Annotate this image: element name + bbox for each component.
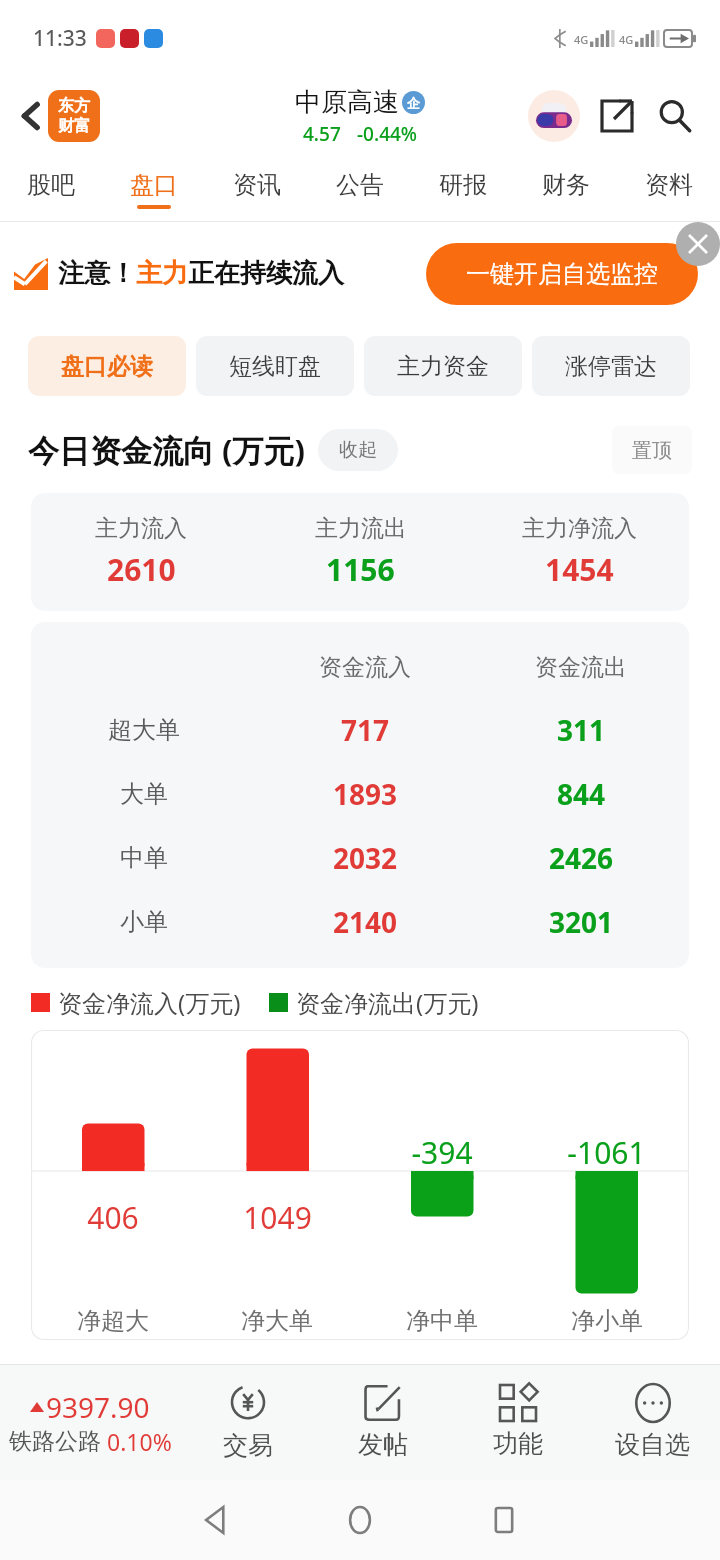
staticText: 交易	[223, 1430, 273, 1461]
button[interactable]: 财务	[514, 156, 617, 222]
staticText: 企	[407, 95, 420, 111]
staticText: 主力流出	[315, 514, 407, 543]
button[interactable]: 发帖	[315, 1364, 450, 1480]
staticText: 406	[87, 1197, 139, 1238]
staticText: 小单	[120, 907, 168, 937]
button[interactable]: 一键开启自选监控	[426, 243, 698, 305]
button[interactable]: 研报	[411, 156, 514, 222]
staticText: 研报	[439, 170, 487, 200]
staticText: 2610	[107, 549, 176, 590]
staticText: 9397.90	[46, 1388, 150, 1426]
staticText: 11:33	[33, 24, 87, 53]
staticText: 净中单	[406, 1306, 478, 1336]
staticText: 铁路公路	[9, 1427, 101, 1456]
staticText: 主力流入	[95, 514, 187, 543]
staticText: 0.10%	[107, 1426, 172, 1457]
button[interactable]: 中单	[31, 826, 689, 890]
staticText: 3201	[549, 903, 614, 941]
staticText: 收起	[339, 438, 377, 462]
staticText: 资金净流入(万元)	[58, 986, 241, 1019]
button[interactable]: 盘口必读	[28, 336, 186, 396]
button[interactable]: 资料	[617, 156, 720, 222]
staticText: -0.44%	[357, 121, 418, 147]
staticText: 超大单	[108, 715, 180, 745]
staticText: 短线盯盘	[229, 352, 321, 381]
staticText: 财富	[58, 116, 90, 136]
staticText: 设自选	[615, 1429, 690, 1460]
button[interactable]: 设自选	[585, 1364, 720, 1480]
button[interactable]: 注意！	[0, 222, 720, 325]
button[interactable]: 406	[31, 1030, 689, 1340]
staticText: 资金流出	[535, 653, 627, 682]
staticText: 股吧	[27, 170, 75, 200]
staticText: 中原高速	[295, 86, 399, 119]
button[interactable]: 涨停雷达	[532, 336, 690, 396]
staticText: 2032	[333, 839, 398, 877]
staticText: 1454	[545, 549, 614, 590]
button[interactable]: 返回	[14, 94, 48, 138]
button[interactable]: 置顶	[612, 426, 692, 474]
staticText: 一键开启自选监控	[466, 259, 658, 289]
staticText: 东方	[58, 96, 90, 116]
button[interactable]: 短线盯盘	[196, 336, 354, 396]
staticText: 资金净流出(万元)	[296, 986, 479, 1019]
staticText: 311	[557, 711, 606, 749]
staticText: 2426	[549, 839, 614, 877]
staticText: 功能	[493, 1428, 543, 1459]
staticText: 主力资金	[397, 352, 489, 381]
staticText: 主力	[136, 257, 188, 290]
staticText: 4G	[574, 32, 589, 47]
button[interactable]: 返回	[144, 1480, 288, 1560]
button[interactable]: 中原高速	[295, 86, 425, 147]
staticText: 净大单	[241, 1306, 313, 1336]
staticText: 4G	[619, 32, 634, 47]
staticText: 主力净流入	[522, 514, 637, 543]
staticText: 资料	[645, 170, 693, 200]
button[interactable]: 盘口	[102, 156, 205, 222]
staticText: 净超大	[77, 1306, 149, 1336]
staticText: 置顶	[632, 438, 672, 463]
button[interactable]: 最近任务	[432, 1480, 576, 1560]
button[interactable]: 资讯	[205, 156, 308, 222]
staticText: 发帖	[358, 1429, 408, 1460]
staticText: -394	[411, 1132, 473, 1173]
staticText: 今日资金流向 (万元)	[28, 429, 306, 471]
staticText: 净小单	[571, 1306, 643, 1336]
button[interactable]: 收起	[318, 429, 398, 471]
button[interactable]: 股吧	[0, 156, 102, 222]
staticText: 1893	[333, 775, 398, 813]
staticText: 财务	[542, 170, 590, 200]
staticText: 注意！	[58, 257, 136, 290]
button[interactable]: 大单	[31, 762, 689, 826]
staticText: 中单	[120, 843, 168, 873]
staticText: 涨停雷达	[565, 352, 657, 381]
staticText: 资金流入	[319, 653, 411, 682]
button[interactable]: 功能	[450, 1364, 585, 1480]
button[interactable]: 超大单	[31, 698, 689, 762]
staticText: -1061	[567, 1132, 646, 1173]
button[interactable]: 交易	[180, 1364, 315, 1480]
button[interactable]: 分享	[592, 91, 642, 141]
button[interactable]: 搜索	[650, 91, 700, 141]
staticText: 4.57	[303, 121, 341, 147]
staticText: 公告	[336, 170, 384, 200]
button[interactable]: 东方财富	[48, 90, 100, 142]
staticText: 大单	[120, 779, 168, 809]
button[interactable]: 小单	[31, 890, 689, 954]
staticText: 盘口	[130, 170, 178, 200]
button[interactable]: 关闭	[676, 222, 720, 266]
staticText: 844	[557, 775, 606, 813]
staticText: 1156	[326, 549, 395, 590]
button[interactable]: 9397.90	[0, 1364, 180, 1480]
button[interactable]: 主力流入	[31, 493, 689, 611]
staticText: 2140	[333, 903, 398, 941]
staticText: 正在持续流入	[188, 257, 344, 290]
button[interactable]: 主力资金	[364, 336, 522, 396]
button[interactable]: 公告	[308, 156, 411, 222]
staticText: 资讯	[233, 170, 281, 200]
button[interactable]: 主屏幕	[288, 1480, 432, 1560]
staticText: 1049	[243, 1197, 312, 1238]
staticText: 717	[341, 711, 390, 749]
staticText: 盘口必读	[61, 352, 153, 381]
button[interactable]: 智能助手	[528, 90, 580, 142]
